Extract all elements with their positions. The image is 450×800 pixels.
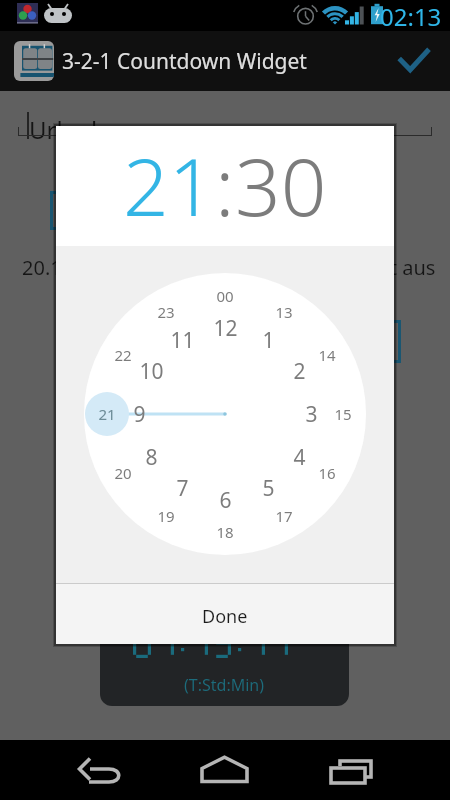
button[interactable]: 4 [277,442,321,472]
staticText: 4 [293,443,306,472]
staticText: 6 [219,486,232,515]
staticText: 15 [334,404,352,424]
staticText: 2 [293,357,306,386]
button[interactable]: 23 [144,297,188,327]
staticText: 14 [318,345,336,365]
button[interactable]: Recent apps [300,740,450,800]
staticText: 1 [262,326,275,355]
staticText: 20 [114,463,132,483]
button[interactable]: 11 [160,325,204,355]
button[interactable]: 15 [321,399,365,429]
staticText: 9 [133,400,146,429]
staticText: 13 [275,302,293,322]
staticText: 00 [216,286,234,306]
button[interactable]: Accept [390,31,450,91]
button[interactable]: 21 [123,130,215,239]
button[interactable]: 13 [262,297,306,327]
staticText: 3 [305,400,318,429]
staticText: 02:13 [380,0,442,31]
button[interactable]: Done [56,584,394,644]
staticText: 12 [213,314,238,343]
button[interactable]: 10 [129,356,173,386]
button[interactable]: 00 [203,281,247,311]
staticText: 16 [318,463,336,483]
button[interactable]: 6 [203,485,247,515]
button[interactable]: 18 [203,517,247,547]
button[interactable]: 22 [101,340,145,370]
staticText: 5 [262,474,275,503]
button[interactable]: 30 [235,130,327,239]
staticText: 3-2-1 Countdown Widget [62,47,307,76]
staticText: 21 [98,404,116,424]
staticText: 22 [114,345,132,365]
staticText: Urlaub [29,113,106,146]
button[interactable]: 3 [289,399,333,429]
button[interactable]: 17 [262,501,306,531]
button[interactable]: 9 [117,399,161,429]
button[interactable]: 7 [160,473,204,503]
staticText: 10 [139,357,164,386]
button[interactable]: 20 [101,458,145,488]
staticText: 23 [157,302,175,322]
button[interactable]: 14 [305,340,349,370]
button[interactable]: Home [150,740,300,800]
staticText: 17 [275,506,293,526]
staticText: 7 [176,474,189,503]
button[interactable]: Back [0,740,150,800]
button[interactable]: 21 [85,399,129,429]
staticText: 8 [145,443,158,472]
staticText: 19 [157,506,175,526]
button[interactable]: 12 [203,313,247,343]
staticText: 20.11.2013 [22,254,125,281]
staticText: Done [202,604,248,629]
staticText: : [215,130,235,239]
button[interactable]: 8 [129,442,173,472]
button[interactable]: 19 [144,501,188,531]
button[interactable]: 16 [305,458,349,488]
button[interactable]: 2 [277,356,321,386]
staticText: 11 [170,326,195,355]
button[interactable]: 1 [246,325,290,355]
staticText: (T:Std:Min) [184,674,265,696]
button[interactable]: 5 [246,473,290,503]
staticText: Urlaub läuft aus [285,254,436,281]
staticText: 18 [216,522,234,542]
